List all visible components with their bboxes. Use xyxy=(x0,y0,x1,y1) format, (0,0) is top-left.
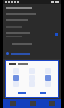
button[interactable]: Selected xyxy=(6,51,58,56)
other: Selected xyxy=(6,52,9,55)
button[interactable] xyxy=(6,19,58,21)
button[interactable]: Checkbox xyxy=(6,31,58,37)
button[interactable]: Colour option xyxy=(45,75,51,81)
button[interactable]: Colour option xyxy=(13,75,19,81)
button[interactable] xyxy=(11,88,32,97)
button[interactable] xyxy=(6,42,58,46)
button[interactable]: Home xyxy=(23,99,42,108)
button[interactable] xyxy=(32,88,53,97)
button[interactable]: Back xyxy=(3,99,23,108)
button[interactable] xyxy=(6,13,58,15)
button[interactable]: Recents xyxy=(42,99,61,108)
